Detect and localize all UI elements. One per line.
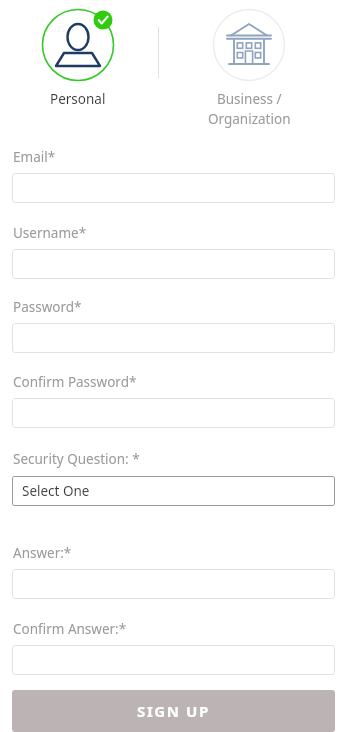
- staticText: SIGN UP: [137, 701, 210, 721]
- staticText: Password*: [13, 298, 82, 316]
- staticText: Username*: [13, 224, 87, 242]
- button[interactable]: [12, 323, 335, 353]
- button[interactable]: [12, 173, 335, 203]
- button[interactable]: [12, 249, 335, 279]
- staticText: Email*: [13, 148, 56, 166]
- button[interactable]: Select One: [12, 476, 335, 506]
- staticText: Business /: [217, 90, 282, 108]
- button[interactable]: Business /: [201, 4, 297, 130]
- staticText: Select One: [22, 482, 90, 500]
- staticText: Security Question: *: [13, 450, 140, 468]
- staticText: Answer:*: [13, 544, 72, 562]
- staticText: Confirm Password*: [13, 373, 137, 391]
- staticText: Confirm Answer:*: [13, 620, 127, 638]
- button[interactable]: Personal: [30, 4, 126, 116]
- button[interactable]: SIGN UP: [12, 690, 335, 732]
- button[interactable]: [12, 645, 335, 675]
- button[interactable]: [12, 398, 335, 428]
- staticText: Organization: [208, 110, 291, 128]
- button[interactable]: [12, 569, 335, 599]
- staticText: Personal: [50, 90, 106, 108]
